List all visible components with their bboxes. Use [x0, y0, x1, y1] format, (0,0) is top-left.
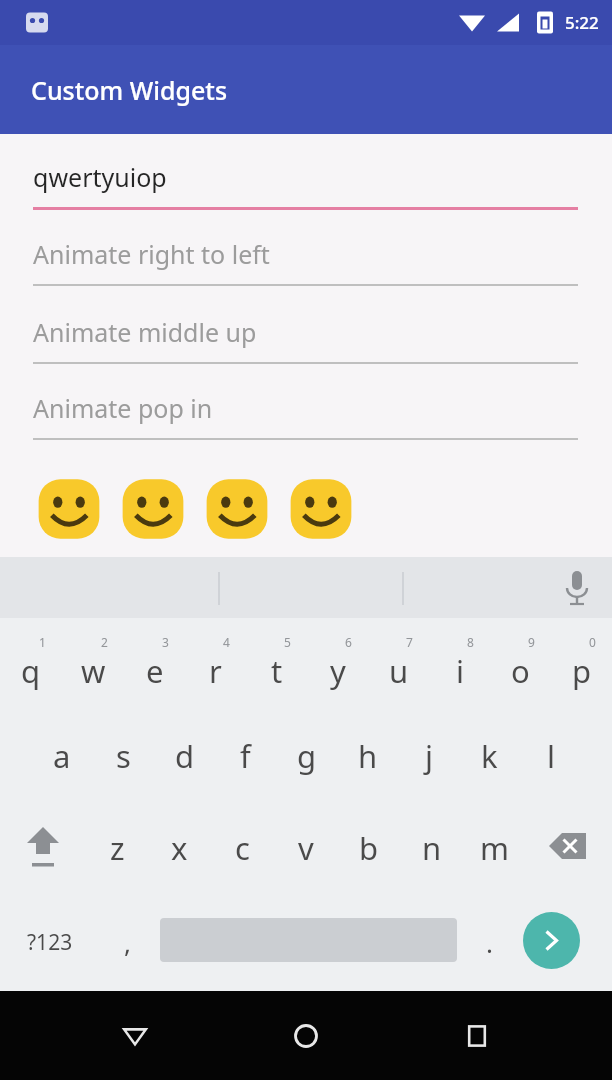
button[interactable]: ?123 — [0, 894, 100, 991]
staticText: d — [175, 735, 195, 777]
button[interactable]: h — [337, 710, 398, 802]
button[interactable]: Voice input — [556, 567, 598, 609]
staticText: 5 — [284, 634, 291, 650]
staticText: 4 — [223, 634, 230, 650]
button[interactable]: 7 — [368, 618, 429, 710]
button[interactable]: d — [154, 710, 215, 802]
staticText: Animate middle up — [33, 315, 257, 349]
staticText: Animate pop in — [33, 391, 213, 425]
staticText: . — [486, 925, 493, 960]
button[interactable]: qwertyuiop — [33, 152, 578, 210]
staticText: z — [110, 827, 125, 869]
staticText: m — [480, 827, 509, 869]
button[interactable]: v — [274, 802, 337, 894]
staticText: ?123 — [27, 928, 73, 957]
staticText: k — [481, 735, 498, 777]
staticText: 7 — [406, 634, 413, 650]
staticText: h — [358, 735, 378, 777]
button[interactable]: l — [520, 710, 581, 802]
staticText: o — [511, 650, 530, 692]
staticText: a — [53, 735, 71, 777]
button[interactable]: 0 — [551, 618, 612, 710]
button[interactable]: z — [86, 802, 148, 894]
button[interactable]: Animate pop in — [33, 384, 578, 440]
button[interactable]: 4 — [185, 618, 246, 710]
button[interactable]: 8 — [429, 618, 490, 710]
staticText: w — [81, 650, 106, 692]
button[interactable]: 6 — [307, 618, 368, 710]
staticText: n — [422, 827, 442, 869]
staticText: q — [21, 650, 41, 692]
button[interactable]: Smiley — [36, 478, 102, 540]
staticText: c — [235, 827, 250, 869]
staticText: f — [240, 735, 251, 777]
button[interactable]: Smiley — [120, 478, 186, 540]
button[interactable]: f — [215, 710, 276, 802]
staticText: 9 — [528, 634, 535, 650]
staticText: j — [425, 735, 433, 777]
staticText: y — [330, 650, 346, 692]
button[interactable]: x — [148, 802, 211, 894]
button[interactable]: g — [276, 710, 337, 802]
staticText: 5:22 — [565, 11, 599, 34]
staticText: 3 — [162, 634, 169, 650]
button[interactable]: 9 — [490, 618, 551, 710]
staticText: 1 — [39, 634, 46, 650]
button[interactable]: Back — [99, 1000, 171, 1072]
button[interactable]: 5 — [246, 618, 307, 710]
button[interactable]: b — [337, 802, 400, 894]
staticText: g — [297, 735, 317, 777]
staticText: x — [171, 827, 188, 869]
staticText: l — [547, 735, 555, 777]
button[interactable]: k — [459, 710, 520, 802]
button[interactable]: Recents — [441, 1000, 513, 1072]
button[interactable]: 3 — [124, 618, 185, 710]
staticText: v — [298, 827, 314, 869]
button[interactable]: , — [100, 894, 155, 991]
staticText: Animate right to left — [33, 237, 270, 271]
staticText: u — [389, 650, 409, 692]
button[interactable]: j — [398, 710, 459, 802]
button[interactable]: Smiley — [288, 478, 354, 540]
staticText: i — [456, 650, 464, 692]
staticText: Custom Widgets — [31, 73, 228, 107]
staticText: 6 — [345, 634, 352, 650]
button[interactable]: s — [93, 710, 154, 802]
button[interactable]: m — [463, 802, 526, 894]
button[interactable]: Backspace — [526, 802, 612, 894]
button[interactable]: Smiley — [204, 478, 270, 540]
staticText: t — [271, 650, 283, 692]
button[interactable]: Animate right to left — [33, 230, 578, 286]
button[interactable]: a — [31, 710, 93, 802]
button[interactable]: Animate middle up — [33, 308, 578, 364]
staticText: s — [116, 735, 131, 777]
staticText: e — [146, 650, 164, 692]
staticText: r — [209, 650, 222, 692]
staticText: 0 — [589, 634, 596, 650]
staticText: , — [124, 925, 131, 960]
button[interactable]: Home — [270, 1000, 342, 1072]
button[interactable]: Enter — [523, 912, 580, 969]
staticText: b — [359, 827, 379, 869]
staticText: 2 — [101, 634, 108, 650]
button[interactable]: Shift — [0, 802, 86, 894]
button[interactable]: 1 — [0, 618, 62, 710]
button[interactable]: n — [400, 802, 463, 894]
staticText: 8 — [467, 634, 474, 650]
button[interactable]: . — [462, 894, 517, 991]
button[interactable]: c — [211, 802, 274, 894]
staticText: p — [572, 650, 592, 692]
staticText: qwertyuiop — [33, 160, 167, 194]
button[interactable]: 2 — [62, 618, 124, 710]
